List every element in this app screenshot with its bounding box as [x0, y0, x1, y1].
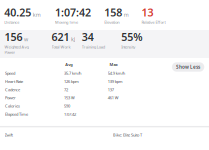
staticText: 54.9 km/h [108, 70, 125, 76]
staticText: Moving Time [55, 19, 78, 25]
staticText: 156 [4, 30, 22, 44]
staticText: w [24, 35, 28, 43]
staticText: 13 [141, 5, 153, 19]
staticText: Elapsed Time [5, 111, 28, 117]
staticText: Speed [5, 70, 15, 76]
staticText: kJ [71, 35, 75, 43]
staticText: Relative Effort [141, 19, 165, 25]
staticText: 126 bpm [64, 79, 79, 84]
staticText: 461 W [108, 95, 119, 100]
staticText: 153 W [64, 95, 75, 100]
staticText: 35.7 km/h [64, 70, 81, 76]
staticText: Power [5, 95, 16, 100]
button[interactable]: Show Less [172, 62, 204, 72]
staticText: m [124, 11, 129, 18]
staticText: Max [109, 62, 117, 67]
staticText: 34 [82, 30, 94, 44]
staticText: 72 [64, 87, 68, 92]
staticText: 158 [104, 5, 122, 19]
staticText: Training Load [82, 44, 105, 49]
staticText: Distance [4, 19, 19, 25]
staticText: Avg [65, 62, 73, 67]
staticText: Cadence [5, 87, 20, 92]
staticText: Show Less [176, 64, 200, 70]
staticText: Total Work [52, 44, 71, 49]
staticText: 1:07:42 [55, 5, 91, 19]
staticText: 1:07:42 [64, 111, 76, 117]
staticText: Bike: Elite Suito T [113, 132, 142, 137]
staticText: 621 [52, 30, 70, 44]
staticText: 139 bpm [108, 79, 123, 84]
staticText: Zwift [5, 132, 13, 137]
staticText: 590 [64, 103, 70, 109]
staticText: 40.25 [4, 5, 31, 19]
staticText: Heart Rate [5, 79, 23, 84]
staticText: Weighted Avg Power [4, 44, 28, 55]
staticText: 55% [121, 30, 142, 44]
staticText: km [33, 11, 41, 18]
staticText: 137 [108, 87, 114, 92]
staticText: Elevation [104, 19, 119, 25]
staticText: Intensity [121, 44, 135, 49]
staticText: Calories [5, 103, 20, 109]
